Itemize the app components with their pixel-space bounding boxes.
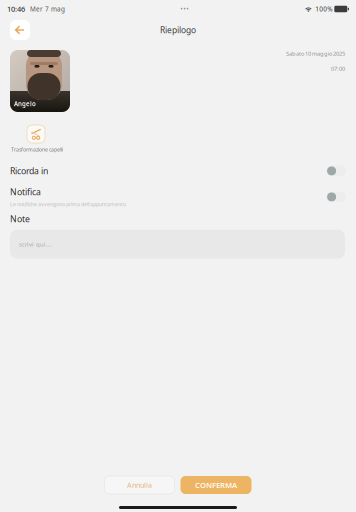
button[interactable]: CONFERMA (180, 476, 251, 494)
staticText: 10:46 (7, 4, 25, 14)
staticText: scrivi qui... (19, 240, 52, 248)
staticText: Angelo (14, 100, 36, 108)
staticText: Trasformazione capelli (11, 146, 63, 153)
staticText: Notifica (10, 186, 41, 198)
button[interactable]: Annulla (104, 476, 174, 494)
staticText: Ricorda in (10, 165, 48, 177)
staticText: Mer 7 mag (30, 5, 65, 13)
staticText: Sabato 10 maggio 2025 (286, 50, 345, 57)
staticText: Note (10, 213, 30, 225)
staticText: 07:00 (331, 64, 345, 72)
button[interactable]: Ricorda in (0, 166, 356, 176)
staticText: Annulla (127, 480, 152, 490)
staticText: Le notifiche avvengono prima dell'appunt… (10, 201, 126, 208)
staticText: ••• (180, 4, 189, 14)
button[interactable]: Notifica (0, 189, 356, 205)
staticText: 100% (315, 5, 332, 13)
staticText: CONFERMA (195, 480, 237, 490)
button[interactable]: Back (10, 20, 30, 40)
staticText: Riepilogo (160, 24, 196, 36)
